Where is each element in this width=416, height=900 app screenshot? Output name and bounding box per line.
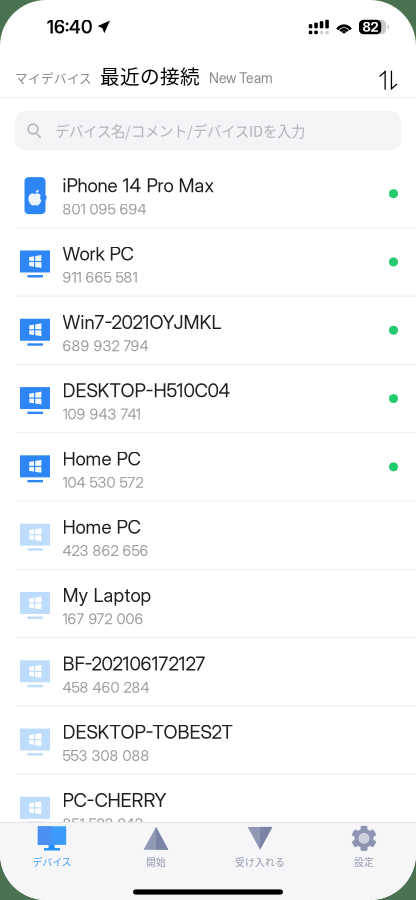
staticText: 458 460 284 <box>62 678 149 696</box>
staticText: My Laptop <box>62 584 151 607</box>
staticText: 開始 <box>146 855 166 869</box>
staticText: 受け入れる <box>235 855 285 869</box>
button[interactable]: 設定 <box>312 822 416 868</box>
button[interactable]: マイデバイス <box>0 68 92 91</box>
button[interactable]: デバイス名/コメント/デバイスIDを入力 <box>15 111 401 150</box>
button[interactable]: Home PC <box>0 433 416 501</box>
button[interactable]: 開始 <box>104 822 208 868</box>
staticText: 553 308 088 <box>62 747 149 764</box>
staticText: 167 972 006 <box>62 610 143 628</box>
staticText: BF-202106172127 <box>62 652 205 675</box>
staticText: デバイス名/コメント/デバイスIDを入力 <box>55 120 305 141</box>
button[interactable]: Win7-2021OYJMKL <box>0 297 416 365</box>
staticText: 851 523 243 <box>62 815 143 833</box>
staticText: DESKTOP-TOBES2T <box>62 721 232 743</box>
staticText: 911 665 581 <box>62 269 137 286</box>
button[interactable]: DESKTOP-TOBES2T <box>0 706 416 775</box>
staticText: Home PC <box>62 447 140 470</box>
button[interactable]: New Team <box>200 70 273 91</box>
staticText: PC-CHERRY <box>62 789 166 811</box>
staticText: 104 530 572 <box>62 473 143 491</box>
staticText: Work PC <box>62 242 133 265</box>
button[interactable]: Work PC <box>0 228 416 297</box>
staticText: 423 862 656 <box>62 542 148 559</box>
button[interactable]: Home PC <box>0 501 416 570</box>
staticText: 689 932 794 <box>62 337 148 355</box>
button[interactable]: 最近の接続 <box>92 61 200 91</box>
staticText: 設定 <box>354 855 374 869</box>
staticText: 801 095 694 <box>62 200 146 218</box>
button[interactable]: デバイス <box>0 822 104 868</box>
staticText: 16:40 <box>47 16 92 38</box>
button[interactable]: PC-CHERRY <box>0 775 416 843</box>
button[interactable]: iPhone 14 Pro Max <box>0 160 416 228</box>
staticText: New Team <box>209 70 273 87</box>
staticText: Home PC <box>62 516 140 538</box>
button[interactable]: Sort <box>379 71 416 91</box>
button[interactable]: DESKTOP-H510C04 <box>0 365 416 433</box>
staticText: マイデバイス <box>15 68 92 87</box>
button[interactable]: 受け入れる <box>208 822 312 868</box>
staticText: デバイス <box>32 855 71 869</box>
staticText: Win7-2021OYJMKL <box>62 311 221 333</box>
staticText: iPhone 14 Pro Max <box>62 174 213 197</box>
staticText: 最近の接続 <box>100 61 200 90</box>
button[interactable]: My Laptop <box>0 570 416 638</box>
staticText: 82 <box>363 19 379 35</box>
staticText: DESKTOP-H510C04 <box>62 379 230 402</box>
button[interactable]: BF-202106172127 <box>0 638 416 706</box>
staticText: 109 943 741 <box>62 405 140 423</box>
